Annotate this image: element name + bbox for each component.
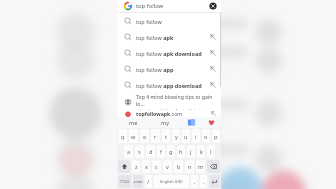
button[interactable]: b [174,160,183,173]
staticText: me [129,119,138,126]
staticText: a [127,148,131,155]
button[interactable]: Top 4 mind blowing tips to gain lo... [117,93,221,110]
staticText: e [143,133,147,140]
button[interactable]: topfollowapk.com [117,110,221,117]
button[interactable]: my [149,117,181,128]
button[interactable]: s [135,145,144,158]
button[interactable]: m [196,160,205,173]
button[interactable]: Shift [118,160,130,173]
button[interactable]: o [202,129,210,143]
button[interactable]: . [200,175,207,188]
staticText: v [166,163,169,170]
staticText: , [194,178,196,185]
button[interactable]: Stickers [201,117,221,128]
button[interactable]: g [167,145,175,158]
button[interactable]: p [212,129,220,143]
button[interactable]: u [182,129,190,143]
button[interactable]: top follow apk [117,29,221,45]
staticText: b [177,163,181,170]
button[interactable]: x [142,160,150,173]
staticText: top follow apk [136,34,174,41]
staticText: top follow apk download [136,50,202,57]
button[interactable]: top follow [117,13,221,29]
button[interactable]: Enter [209,175,220,188]
staticText: q [121,133,125,140]
staticText: top follow app [136,66,174,73]
button[interactable]: n [185,160,194,173]
button[interactable]: k [197,145,205,158]
button[interactable]: / [145,175,152,188]
staticText: i [195,133,197,140]
button[interactable]: y [172,129,180,143]
staticText: top follow [136,18,162,25]
staticText: s [138,148,141,155]
button[interactable]: GIF [181,117,201,128]
button[interactable]: r [151,129,160,143]
staticText: z [135,163,138,170]
staticText: r [154,133,157,140]
staticText: c [155,163,158,170]
staticText: g [169,148,173,155]
button[interactable]: j [187,145,195,158]
staticText: .com [133,179,143,185]
staticText: o [204,133,208,140]
button[interactable]: q [118,129,127,143]
staticText: ?123 [120,179,130,185]
staticText: y [175,133,178,140]
button[interactable]: top follow apk download [117,45,221,61]
staticText: d [149,148,153,155]
button[interactable]: d [146,145,155,158]
staticText: Top 4 mind blowing tips to gain lo... [136,93,217,107]
staticText: x [145,163,148,170]
staticText: ytteacher.ro/p/top-4-mind-blowing-tips..… [136,108,217,110]
staticText: k [200,148,203,155]
button[interactable]: z [132,160,140,173]
staticText: j [190,148,192,155]
staticText: l [210,148,212,155]
staticText: my [161,119,169,126]
other: GIF [187,118,196,127]
staticText: top follow app download [136,82,202,89]
staticText: f [160,148,162,155]
staticText: m [198,163,204,170]
button[interactable]: t [162,129,170,143]
staticText: / [147,178,150,185]
button[interactable]: c [152,160,161,173]
button[interactable]: h [177,145,185,158]
button[interactable]: Backspace [207,160,220,173]
staticText: t [165,133,167,140]
button[interactable]: English (UK) [154,175,189,188]
button[interactable]: top follow [117,0,221,12]
other: Clear search [209,2,217,10]
button[interactable]: top follow app [117,61,221,77]
staticText: w [131,133,136,140]
button[interactable]: v [163,160,172,173]
button[interactable]: ?123 [118,175,131,188]
staticText: p [214,133,218,140]
staticText: English (UK) [160,179,183,184]
button[interactable]: , [191,175,198,188]
staticText: topfollowapk.com [136,110,183,117]
button[interactable]: me [117,117,149,128]
button[interactable]: top follow app download [117,77,221,93]
button[interactable]: i [192,129,200,143]
button[interactable]: w [129,129,138,143]
button[interactable]: a [124,145,133,158]
other: Stickers [207,118,216,127]
button[interactable]: f [157,145,165,158]
button[interactable]: l [207,145,215,158]
staticText: top follow [136,2,164,10]
staticText: u [184,133,188,140]
button[interactable]: .com [133,175,143,188]
staticText: . [203,178,205,185]
button[interactable]: e [140,129,149,143]
staticText: h [179,148,183,155]
staticText: n [188,163,192,170]
